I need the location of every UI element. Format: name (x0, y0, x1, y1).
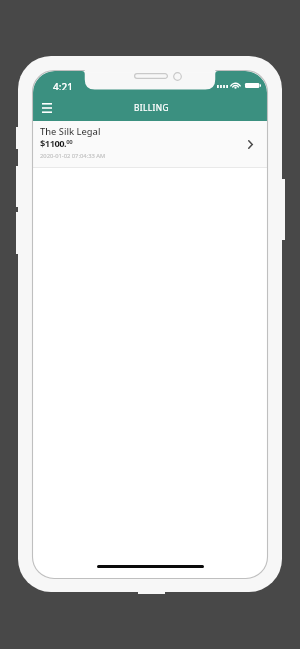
staticText: BILLING (134, 102, 169, 113)
staticText: $1100.00 (40, 137, 73, 150)
staticText: 4:21 (53, 80, 73, 94)
button[interactable]: View billing details (241, 135, 259, 153)
button[interactable]: The Silk Legal (33, 121, 267, 167)
staticText: 2020-01-02 07:04:33 AM (40, 152, 106, 160)
button[interactable]: Open navigation menu (33, 94, 61, 121)
staticText: The Silk Legal (40, 125, 101, 138)
